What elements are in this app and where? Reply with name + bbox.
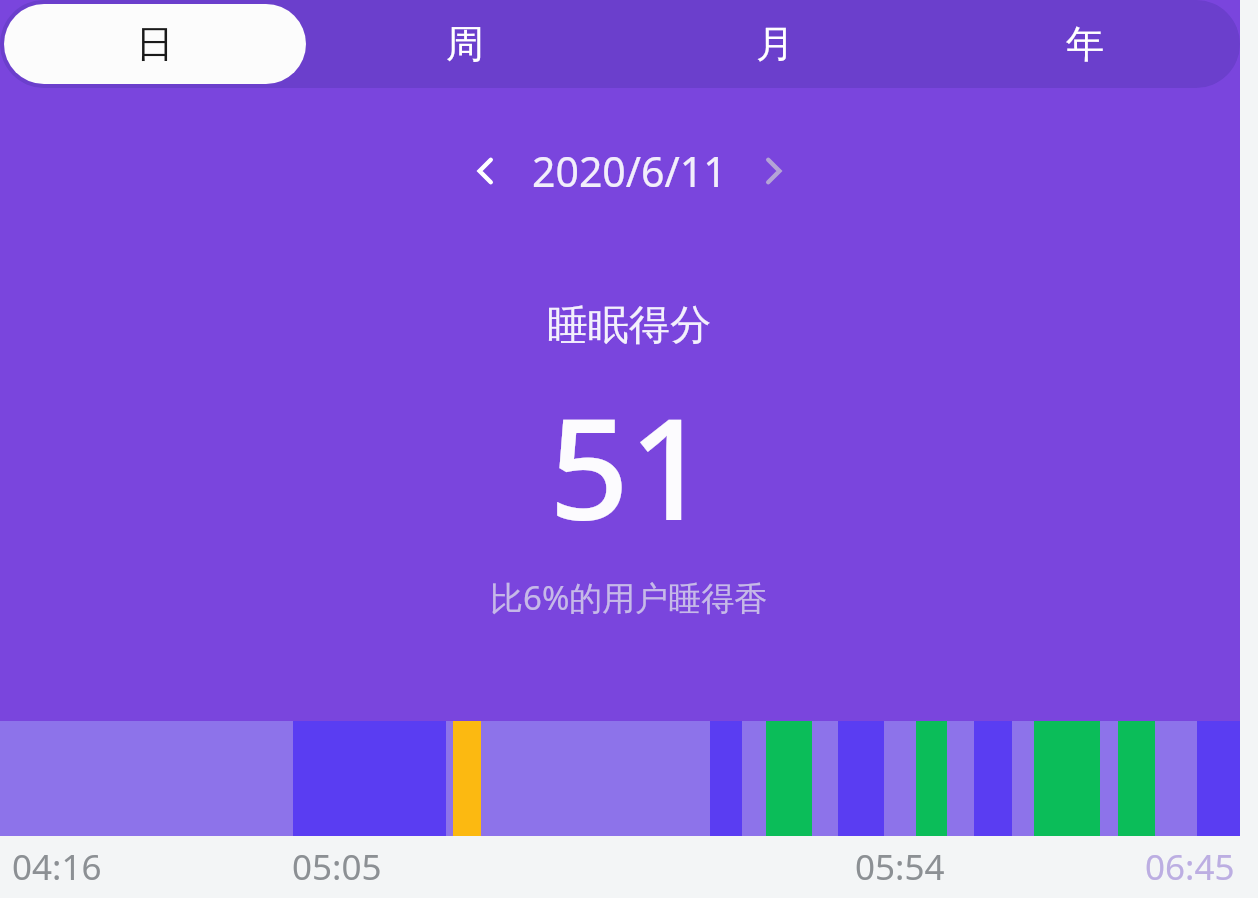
staticText: 04:16 <box>12 843 102 891</box>
staticText: 05:54 <box>855 843 945 891</box>
staticText: 年 <box>1066 20 1104 68</box>
staticText: 月 <box>756 20 794 68</box>
button[interactable]: 周 <box>314 4 616 84</box>
staticText: 日 <box>136 20 174 68</box>
staticText: 比6%的用户睡得香 <box>490 575 768 620</box>
staticText: 51 <box>549 370 710 561</box>
staticText: 周 <box>446 20 484 68</box>
button[interactable]: 月 <box>624 4 926 84</box>
button[interactable]: Next day <box>737 135 809 207</box>
button[interactable]: Sleep stages chart <box>0 721 1258 836</box>
button[interactable]: Previous day <box>450 135 522 207</box>
staticText: 05:05 <box>292 843 382 891</box>
staticText: 睡眠得分 <box>547 300 711 352</box>
button[interactable]: 日 <box>4 4 306 84</box>
staticText: 06:45 <box>1145 843 1235 891</box>
button[interactable]: 年 <box>934 4 1236 84</box>
staticText: 2020/6/11 <box>532 143 727 199</box>
